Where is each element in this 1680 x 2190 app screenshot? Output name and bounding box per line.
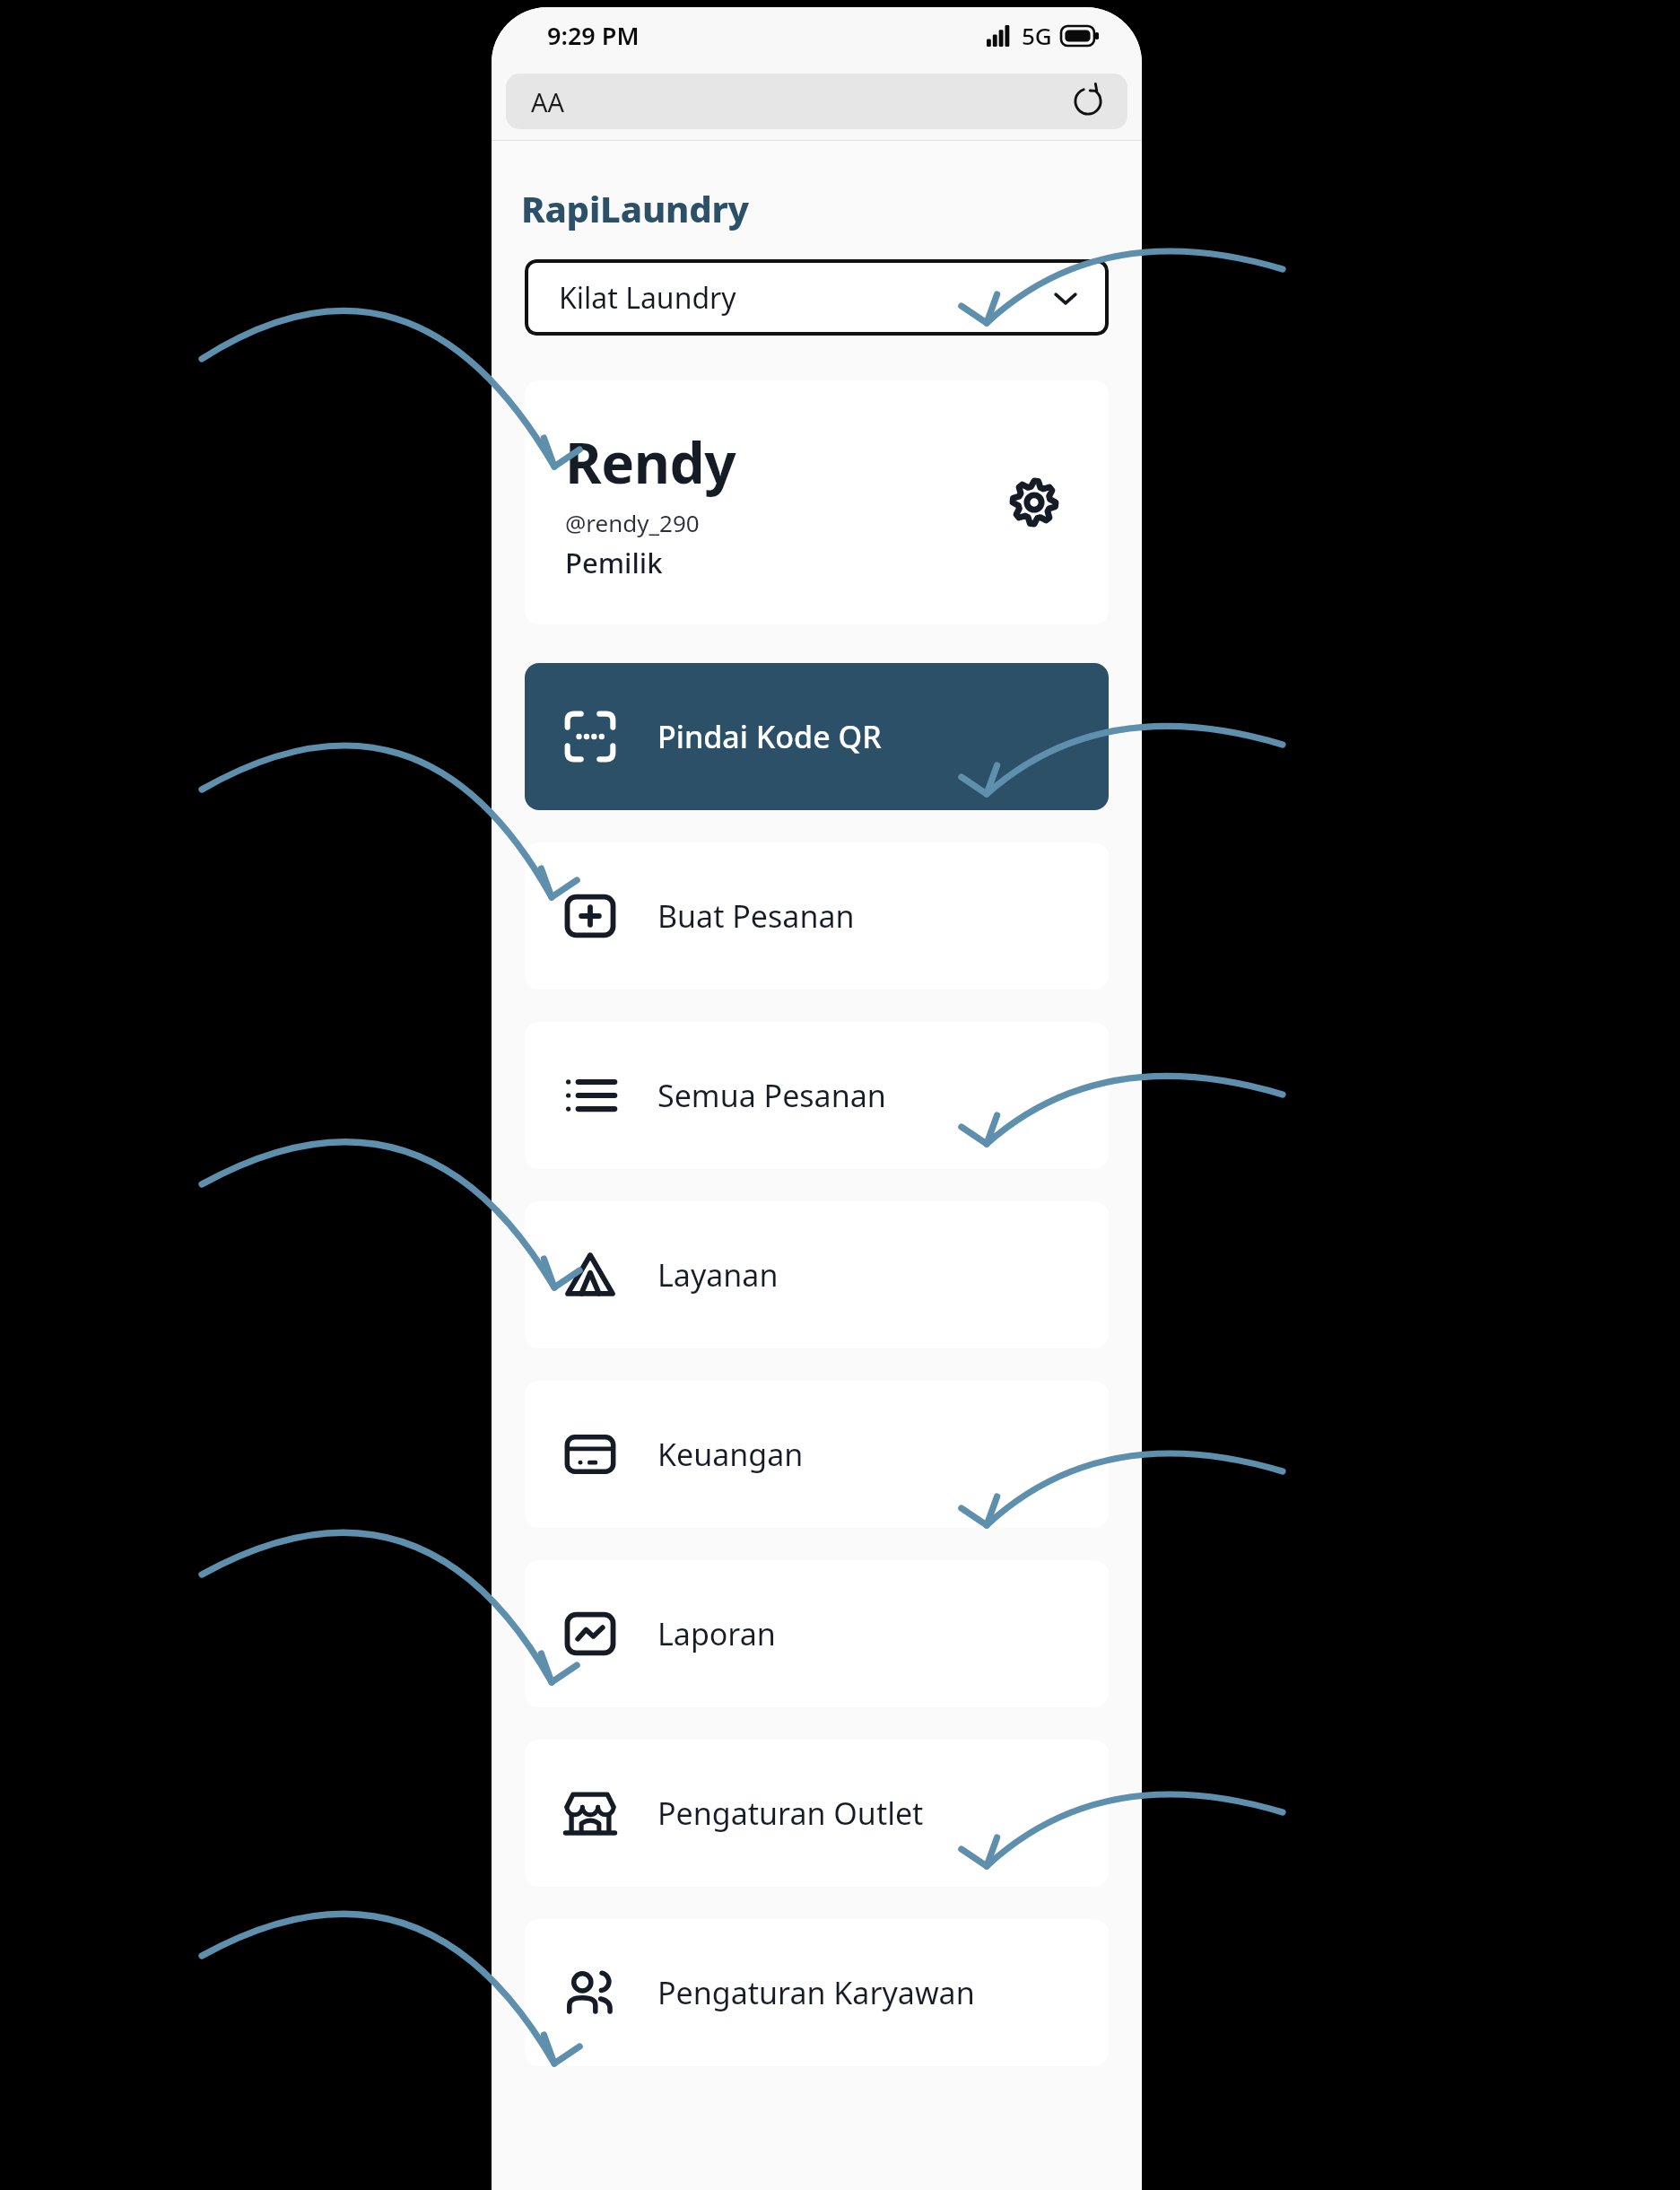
staticText: Layanan (657, 1254, 779, 1296)
staticText: Buat Pesanan (657, 895, 855, 937)
button[interactable]: Kilat Laundry (525, 259, 1109, 336)
button[interactable]: Rendy (525, 380, 1109, 624)
staticText: Kilat Laundry (559, 278, 736, 318)
staticText: Pengaturan Karyawan (657, 1972, 975, 2013)
staticText: 5G (1022, 20, 1052, 51)
button[interactable]: Keuangan (525, 1381, 1109, 1528)
button[interactable]: Pengaturan Outlet (525, 1740, 1109, 1887)
button[interactable]: Laporan (525, 1560, 1109, 1707)
button[interactable]: AA (506, 74, 1127, 129)
staticText: 9:29 PM (547, 19, 640, 52)
button[interactable]: Pindai Kode QR (525, 663, 1109, 810)
staticText: RapiLaundry (521, 184, 749, 232)
button[interactable]: Reload (1068, 82, 1108, 121)
button[interactable]: Layanan (525, 1201, 1109, 1348)
button[interactable]: Semua Pesanan (525, 1022, 1109, 1169)
button[interactable]: Buat Pesanan (525, 842, 1109, 990)
button[interactable]: Pengaturan Karyawan (525, 1919, 1109, 2066)
staticText: Rendy (565, 424, 736, 500)
staticText: Laporan (657, 1613, 776, 1654)
staticText: @rendy_290 (565, 507, 700, 538)
staticText: Semua Pesanan (657, 1075, 886, 1116)
staticText: Pemilik (565, 544, 663, 581)
staticText: Pindai Kode QR (657, 716, 882, 757)
button[interactable]: Pengaturan (1003, 471, 1066, 534)
staticText: Keuangan (657, 1434, 804, 1475)
staticText: AA (531, 84, 565, 119)
staticText: Pengaturan Outlet (657, 1793, 924, 1834)
